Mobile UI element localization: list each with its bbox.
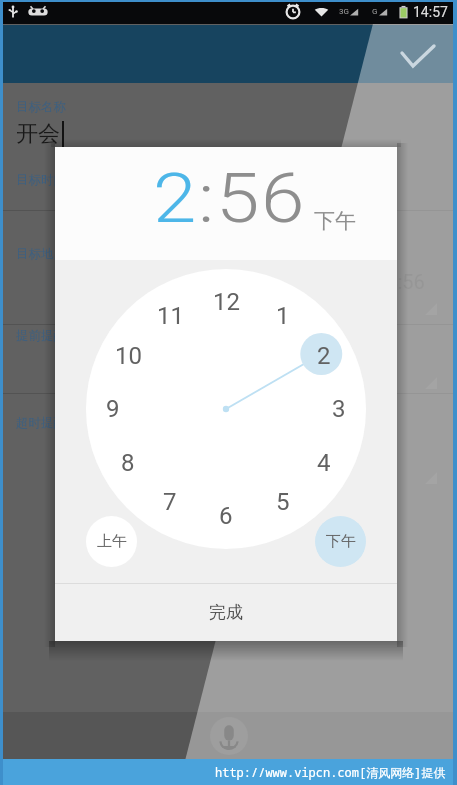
- staticText: 3G: [339, 7, 349, 16]
- staticText: 目标地点: [16, 246, 66, 262]
- button[interactable]: 下午: [314, 208, 356, 234]
- staticText: 超时提醒: [16, 415, 66, 431]
- staticText: 4: [317, 449, 331, 477]
- staticText: 6: [219, 502, 233, 530]
- staticText: G: [372, 7, 378, 16]
- button[interactable]: 6: [206, 499, 246, 533]
- staticText: 9: [106, 395, 120, 423]
- staticText: 1: [276, 302, 290, 330]
- staticText: 目标时间: [16, 172, 66, 188]
- staticText: 目标名称: [16, 99, 66, 115]
- button[interactable]: 超时提醒: [0, 408, 457, 438]
- staticText: 提前提醒: [16, 328, 66, 344]
- button[interactable]: Save: [395, 25, 457, 83]
- button[interactable]: 12: [206, 285, 246, 319]
- staticText: 7: [163, 488, 177, 516]
- staticText: 完成: [209, 602, 243, 623]
- button[interactable]: 11: [150, 299, 190, 333]
- button[interactable]: 完成: [55, 584, 397, 641]
- button[interactable]: 下午: [315, 516, 366, 567]
- staticText: 8: [121, 449, 135, 477]
- staticText: http://www.vipcn.com[清风网络]提供: [215, 764, 446, 780]
- button[interactable]: 3: [319, 392, 359, 426]
- staticText: 14:57: [413, 4, 448, 20]
- button[interactable]: 7: [150, 485, 190, 519]
- button[interactable]: 2: [153, 159, 199, 239]
- button[interactable]: 5: [263, 485, 303, 519]
- button[interactable]: 目标名称: [0, 92, 457, 122]
- staticText: 14:56: [375, 270, 425, 293]
- button[interactable]: 2: [304, 339, 344, 373]
- staticText: 下午: [326, 532, 356, 551]
- staticText: 开会: [16, 120, 60, 148]
- staticText: 2: [317, 342, 331, 370]
- button[interactable]: :56: [198, 159, 306, 239]
- button[interactable]: 8: [108, 446, 148, 480]
- button[interactable]: 目标时间: [0, 165, 457, 195]
- staticText: 上午: [97, 532, 127, 551]
- staticText: 5: [276, 488, 290, 516]
- button[interactable]: 9: [93, 392, 133, 426]
- staticText: 3: [332, 395, 346, 423]
- button[interactable]: 1: [263, 299, 303, 333]
- staticText: 10: [115, 342, 142, 370]
- button[interactable]: 目标地点: [0, 239, 457, 269]
- staticText: 12: [213, 288, 240, 316]
- button[interactable]: 4: [304, 446, 344, 480]
- button[interactable]: 10: [108, 339, 148, 373]
- button[interactable]: 提前提醒: [0, 321, 457, 351]
- button[interactable]: 上午: [86, 516, 137, 567]
- staticText: 11: [157, 302, 184, 330]
- button[interactable]: Voice input: [210, 717, 248, 755]
